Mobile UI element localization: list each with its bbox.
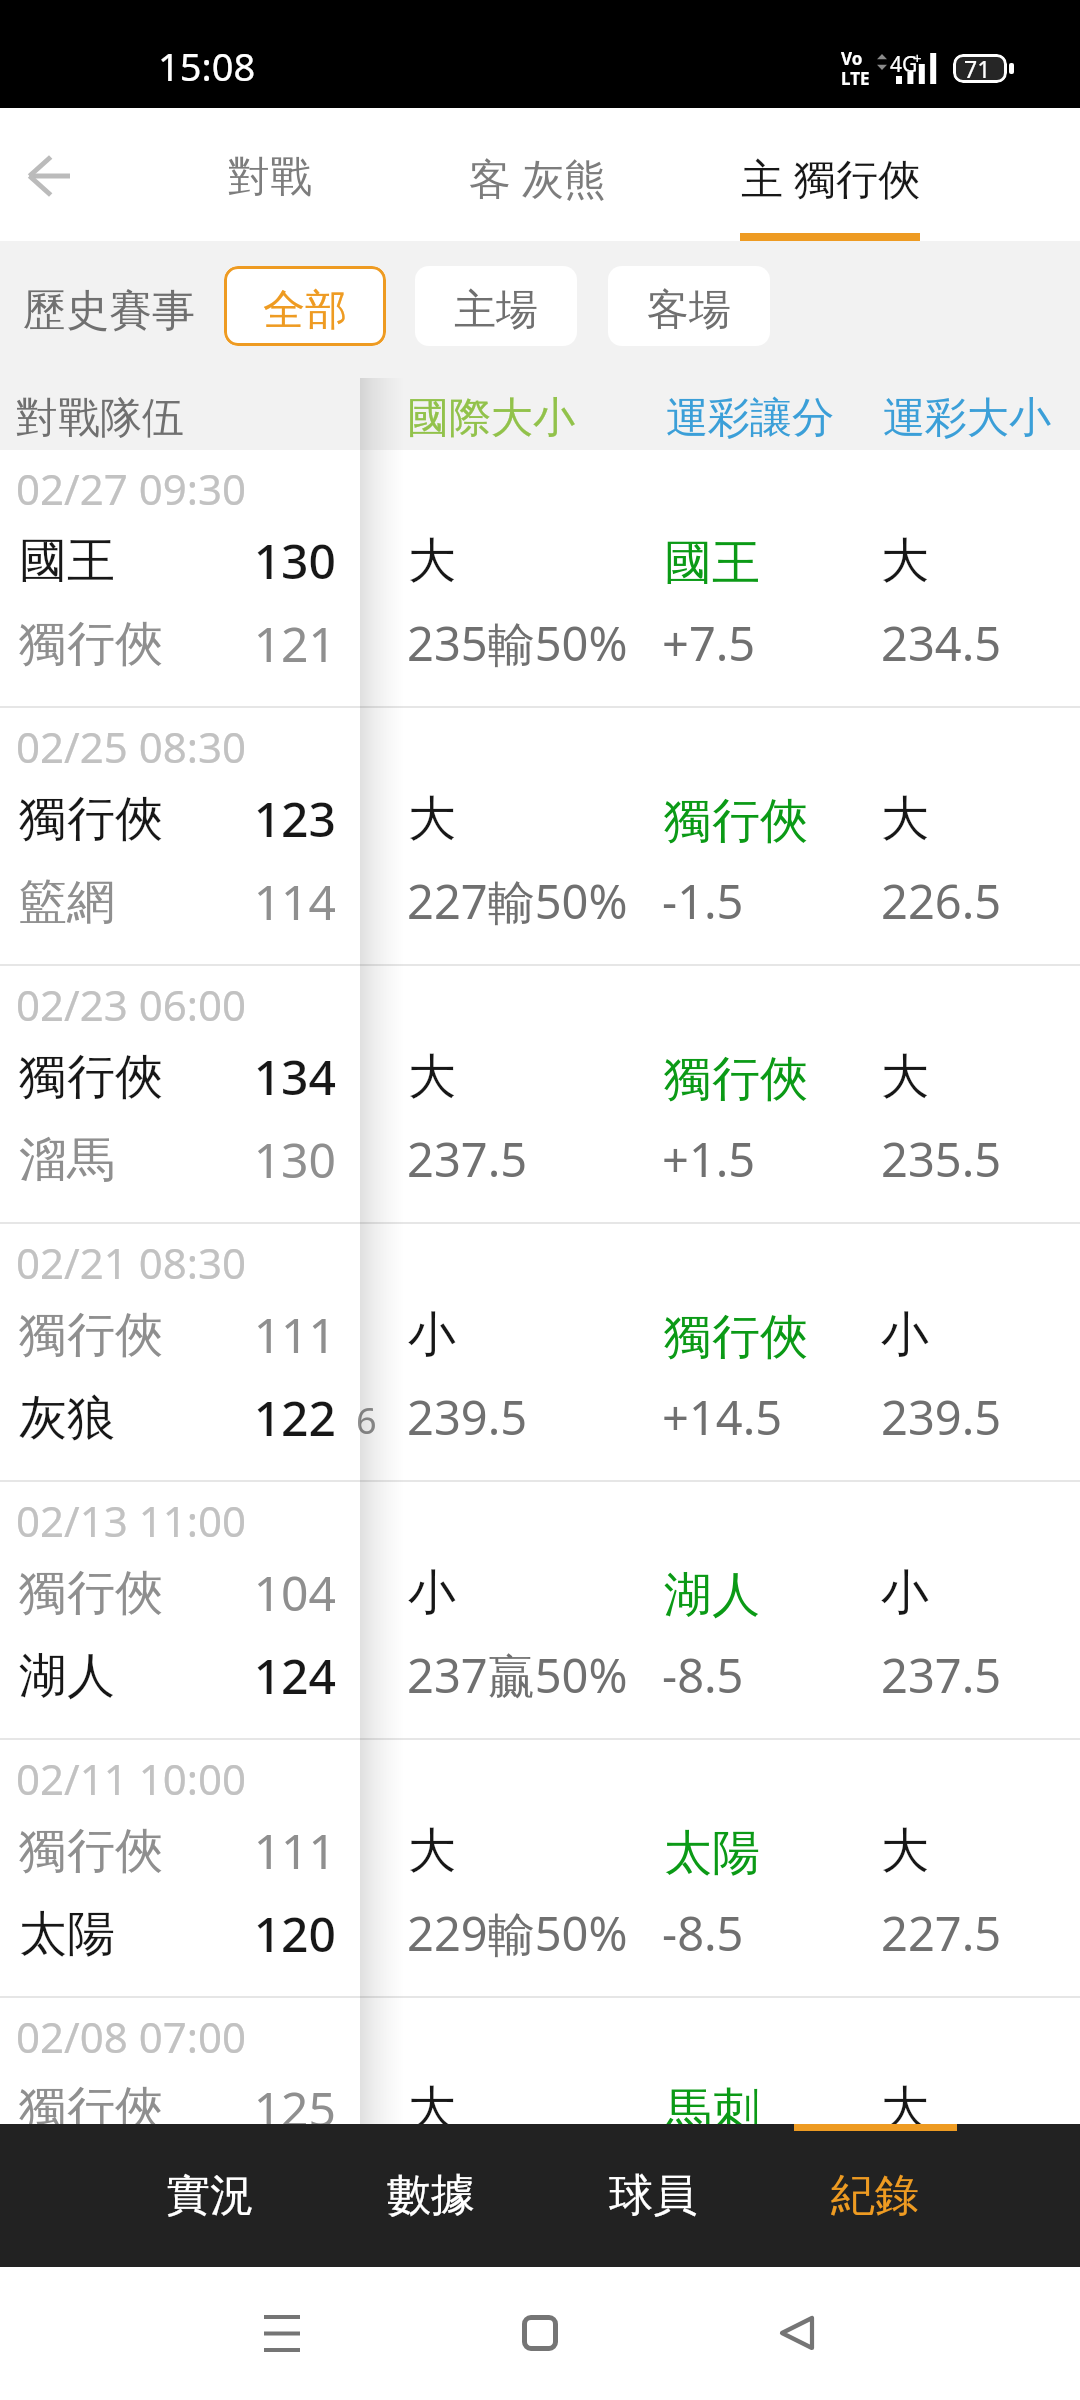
button[interactable]: 02/23 06:00 <box>0 966 1080 1222</box>
staticText: 獨行俠 <box>664 1049 808 1109</box>
staticText: 獨行俠 <box>19 789 163 849</box>
staticText: 籃網 <box>19 872 115 932</box>
staticText: 獨行俠 <box>19 614 163 674</box>
button[interactable]: 實況 <box>99 2124 320 2267</box>
button[interactable]: 客場 <box>608 266 770 346</box>
staticText: 大 <box>408 2079 456 2139</box>
staticText: 121 <box>0 611 336 676</box>
staticText: 運彩讓分 <box>666 392 834 445</box>
staticText: 湖人 <box>19 1646 115 1706</box>
staticText: 運彩大小 <box>883 392 1051 445</box>
staticText: 紀錄 <box>831 2168 919 2223</box>
button[interactable]: 數據 <box>320 2124 542 2267</box>
staticText: 111 <box>0 1302 336 1367</box>
staticText: 大 <box>408 1821 456 1881</box>
staticText: 235.5 <box>881 1127 1002 1191</box>
staticText: 234.5 <box>881 611 1002 675</box>
button[interactable]: 球員 <box>542 2124 764 2267</box>
staticText: 湖人 <box>664 1565 760 1625</box>
button[interactable]: 對戰 <box>150 108 390 241</box>
staticText: 231.5 <box>881 2159 1002 2223</box>
staticText: 大 <box>408 789 456 849</box>
staticText: 122 <box>0 1385 336 1450</box>
staticText: 獨行俠 <box>19 2079 163 2139</box>
button[interactable]: 主 獨行俠 <box>700 108 960 241</box>
staticText: 02/23 06:00 <box>16 976 246 1033</box>
staticText: 小 <box>881 1305 929 1365</box>
staticText: 125 <box>0 2076 336 2141</box>
staticText: 數據 <box>387 2168 475 2223</box>
staticText: 111 <box>0 1818 336 1883</box>
staticText: 大 <box>881 531 929 591</box>
staticText: 02/13 11:00 <box>16 1492 246 1549</box>
staticText: 229輸50% <box>407 1901 628 1965</box>
button[interactable]: 02/21 08:30 <box>0 1224 1080 1480</box>
staticText: 6 <box>356 1396 377 1445</box>
staticText: 灰狼 <box>19 1388 115 1448</box>
staticText: 小 <box>408 1305 456 1365</box>
staticText: 02/11 10:00 <box>16 1750 246 1807</box>
staticText: 太陽 <box>19 1904 115 1964</box>
staticText: 國王 <box>19 531 115 591</box>
staticText: 大 <box>881 2079 929 2139</box>
staticText: 小 <box>408 1563 456 1623</box>
staticText: 134 <box>0 1044 336 1109</box>
staticText: 71 <box>964 54 991 82</box>
button[interactable]: Recent apps <box>222 2273 342 2393</box>
staticText: 大 <box>881 1047 929 1107</box>
staticText: 237贏50% <box>407 1643 628 1707</box>
button[interactable]: Back <box>737 2273 857 2393</box>
staticText: 235輸50% <box>407 611 628 675</box>
button[interactable]: 02/25 08:30 <box>0 708 1080 964</box>
staticText: 130 <box>0 1127 336 1192</box>
staticText: 02/25 08:30 <box>16 718 246 775</box>
staticText: 02/27 09:30 <box>16 460 246 517</box>
staticText: 獨行俠 <box>19 1563 163 1623</box>
button[interactable]: 02/08 07:00 <box>0 1998 1080 2124</box>
staticText: 120 <box>0 1901 336 1966</box>
staticText: 大 <box>881 789 929 849</box>
staticText: -8.5 <box>662 1643 744 1707</box>
button[interactable]: 主場 <box>415 266 577 346</box>
button[interactable]: 紀錄 <box>764 2124 986 2267</box>
staticText: -3.5 <box>662 2159 744 2223</box>
button[interactable]: Back <box>0 118 107 234</box>
staticText: 237.5 <box>407 1127 528 1191</box>
button[interactable]: 客 灰熊 <box>390 108 684 241</box>
staticText: 大 <box>408 531 456 591</box>
staticText: 127 <box>0 2159 336 2224</box>
staticText: 客 灰熊 <box>469 149 606 206</box>
staticText: 獨行俠 <box>19 1305 163 1365</box>
staticText: 大 <box>408 1047 456 1107</box>
staticText: 124 <box>0 1643 336 1708</box>
staticText: -8.5 <box>662 1901 744 1965</box>
staticText: 226.5 <box>881 869 1002 933</box>
staticText: 123 <box>0 786 336 851</box>
staticText: 130 <box>0 528 336 593</box>
staticText: 實況 <box>166 2168 254 2223</box>
staticText: LTE <box>841 67 870 90</box>
staticText: 主 獨行俠 <box>741 149 920 206</box>
staticText: 237.5 <box>881 1643 1002 1707</box>
staticText: 4G <box>890 50 918 79</box>
staticText: +7.5 <box>662 611 756 675</box>
staticText: 獨行俠 <box>19 1821 163 1881</box>
button[interactable]: 全部 <box>224 266 386 346</box>
staticText: -1.5 <box>662 869 744 933</box>
staticText: 客場 <box>647 284 731 337</box>
staticText: 大 <box>881 1821 929 1881</box>
staticText: 02/21 08:30 <box>16 1234 246 1291</box>
staticText: +14.5 <box>662 1385 783 1449</box>
staticText: 獨行俠 <box>664 791 808 851</box>
staticText: 227.5 <box>881 1901 1002 1965</box>
button[interactable]: Home <box>480 2273 600 2393</box>
staticText: 104 <box>0 1560 336 1625</box>
staticText: Vo <box>841 47 863 70</box>
staticText: 對戰隊伍 <box>16 392 184 445</box>
staticText: 主場 <box>454 284 538 337</box>
staticText: 239.5 <box>407 1385 528 1449</box>
button[interactable]: 02/27 09:30 <box>0 450 1080 706</box>
button[interactable]: 02/11 10:00 <box>0 1740 1080 1996</box>
button[interactable]: 02/13 11:00 <box>0 1482 1080 1738</box>
